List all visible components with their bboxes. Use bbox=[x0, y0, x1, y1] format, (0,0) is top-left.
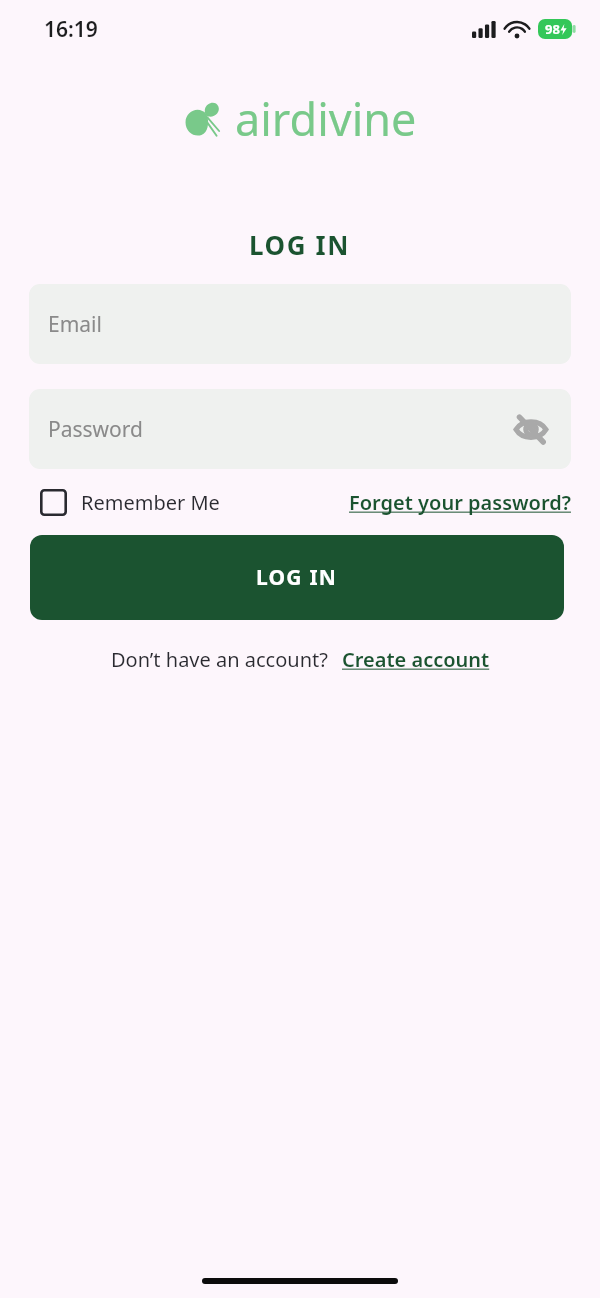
staticText: 98 bbox=[545, 20, 560, 38]
staticText: LOG IN bbox=[256, 563, 338, 592]
staticText: LOG IN bbox=[249, 227, 351, 262]
button[interactable]: LOG IN bbox=[30, 535, 564, 620]
button[interactable]: Forget your password? bbox=[349, 489, 571, 516]
staticText: Email bbox=[48, 310, 102, 339]
button[interactable]: Remember Me bbox=[40, 489, 220, 516]
button[interactable]: Email bbox=[29, 284, 571, 364]
staticText: Forget your password? bbox=[349, 489, 571, 516]
staticText: 16:19 bbox=[44, 15, 98, 44]
staticText: Remember Me bbox=[81, 489, 220, 516]
staticText: Create account bbox=[342, 646, 490, 673]
staticText: Don’t have an account? bbox=[111, 646, 328, 673]
button[interactable]: Create account bbox=[342, 646, 490, 673]
button[interactable]: Password bbox=[29, 389, 571, 469]
button[interactable]: Show password bbox=[511, 409, 551, 449]
staticText: airdivine bbox=[235, 88, 417, 149]
staticText: Password bbox=[48, 415, 143, 444]
